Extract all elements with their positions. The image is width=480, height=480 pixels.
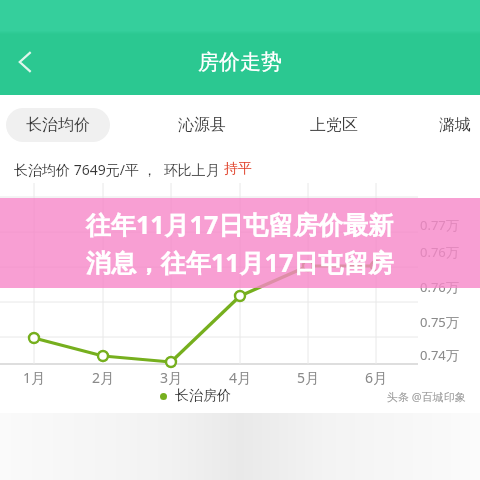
staticText: 房价走势 bbox=[198, 49, 282, 75]
staticText: 长治房价 bbox=[175, 387, 231, 405]
staticText: 往年11月17日屯留房价最新 bbox=[86, 207, 394, 241]
staticText: 消息，往年11月17日屯留房 bbox=[86, 245, 394, 279]
staticText: 3月 bbox=[160, 368, 183, 387]
button[interactable]: 上党区 bbox=[282, 108, 386, 142]
staticText: 5月 bbox=[297, 368, 320, 387]
staticText: 0.77万 bbox=[420, 216, 459, 234]
staticText: 持平 bbox=[224, 160, 252, 178]
staticText: 长治均价 bbox=[26, 115, 90, 135]
staticText: 潞城 bbox=[439, 115, 471, 135]
staticText: 4月 bbox=[229, 368, 252, 387]
staticText: 头条 @百城印象 bbox=[387, 389, 466, 404]
button[interactable]: 长治均价 bbox=[6, 108, 110, 142]
staticText: 沁源县 bbox=[178, 115, 226, 135]
staticText: 上党区 bbox=[310, 115, 358, 135]
button[interactable]: Back bbox=[0, 36, 52, 88]
staticText: 0.74万 bbox=[420, 346, 459, 364]
staticText: 长治均价 7649元/平 ， 环比上月 bbox=[14, 160, 224, 179]
staticText: 0.76万 bbox=[420, 243, 459, 261]
staticText: 6月 bbox=[365, 368, 388, 387]
button[interactable]: 潞城 bbox=[403, 108, 480, 142]
staticText: 2月 bbox=[92, 368, 115, 387]
button[interactable]: 沁源县 bbox=[150, 108, 254, 142]
staticText: 0.75万 bbox=[420, 313, 459, 331]
staticText: 1月 bbox=[23, 368, 46, 387]
staticText: 0.76万 bbox=[420, 278, 459, 296]
